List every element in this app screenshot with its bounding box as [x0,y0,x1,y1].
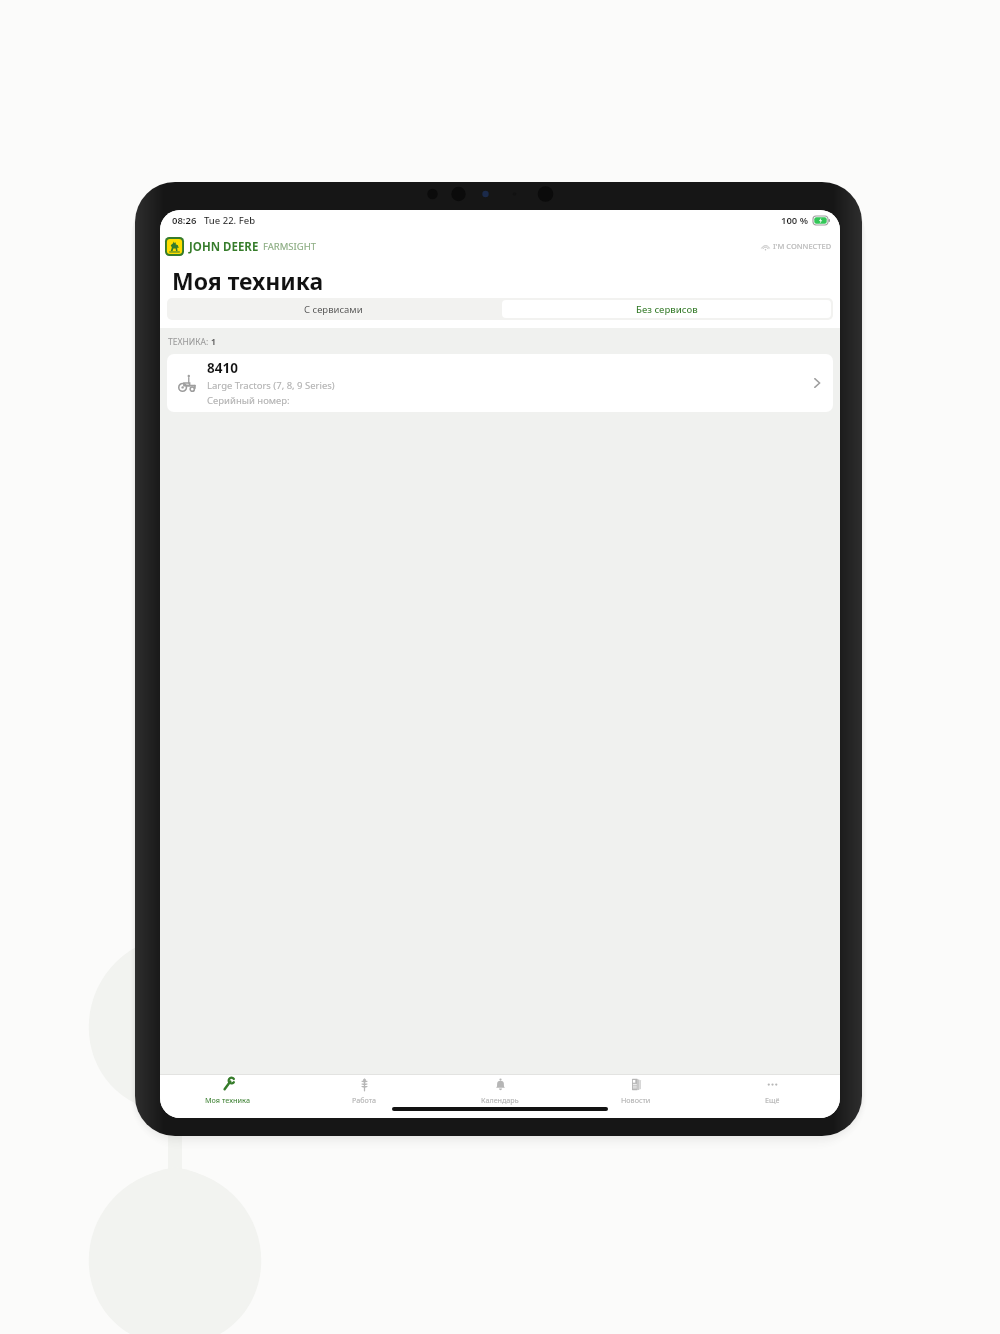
staticText: Новости [621,1095,651,1105]
staticText: Календарь [481,1095,519,1105]
button[interactable]: Ещё [704,1075,840,1106]
staticText: С сервисами [304,303,363,316]
button[interactable]: I'm connected [761,241,832,251]
button[interactable]: Моя техника [160,1075,296,1106]
staticText: I'M CONNECTED [773,241,832,251]
button[interactable]: Новости [568,1075,704,1106]
button[interactable]: С сервисами [167,298,500,320]
staticText: Без сервисов [636,303,698,316]
button[interactable]: Календарь [432,1075,568,1106]
button[interactable]: JOHN DEERE [165,237,317,256]
staticText: Серийный номер: [207,394,290,407]
staticText: Tue 22. Feb [204,214,256,227]
staticText: Моя техника [172,265,324,296]
button[interactable]: 8410 [167,354,833,412]
staticText: FARMSIGHT [263,240,317,253]
staticText: 100 % [781,214,809,227]
staticText: Моя техника [205,1095,251,1105]
staticText: Large Tractors (7, 8, 9 Series) [207,379,335,392]
staticText: 1 [211,336,216,348]
staticText: Работа [352,1095,376,1105]
staticText: 8410 [207,359,238,377]
staticText: Ещё [765,1095,780,1105]
staticText: JOHN DEERE [189,239,259,255]
button[interactable]: Работа [296,1075,432,1106]
staticText: 08:26 [172,214,197,227]
staticText: ТЕХНИКА: [168,336,211,348]
button[interactable]: Без сервисов [502,300,831,318]
